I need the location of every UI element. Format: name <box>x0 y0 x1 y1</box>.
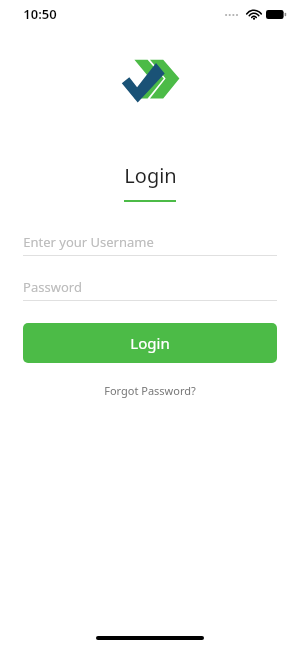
button[interactable]: Enter your Username <box>23 229 277 256</box>
button[interactable]: Password <box>23 274 277 301</box>
staticText: 10:50 <box>23 5 57 23</box>
button[interactable]: Forgot Password? <box>92 379 208 402</box>
staticText: Forgot Password? <box>104 383 196 398</box>
staticText: Login <box>124 162 177 189</box>
staticText: Password <box>23 278 82 296</box>
staticText: Enter your Username <box>23 233 154 251</box>
staticText: Login <box>130 333 170 353</box>
button[interactable]: Login <box>23 323 277 363</box>
